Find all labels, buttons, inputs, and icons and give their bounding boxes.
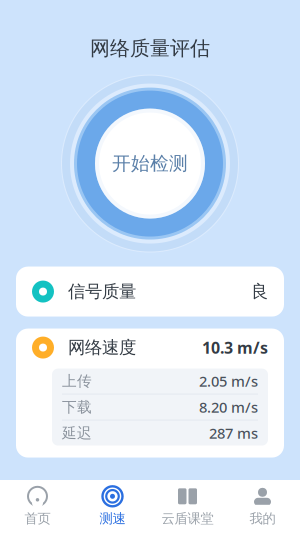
button[interactable]: 信号质量: [16, 267, 284, 317]
staticText: 良: [251, 281, 268, 302]
staticText: 上传: [62, 372, 92, 390]
staticText: 下载: [62, 398, 92, 416]
button[interactable]: 云盾课堂: [150, 480, 225, 533]
staticText: 2.05 m/s: [199, 371, 258, 391]
button[interactable]: 测速: [75, 480, 150, 533]
staticText: 首页: [24, 510, 50, 527]
staticText: 测速: [99, 510, 125, 527]
button[interactable]: 开始检测: [99, 113, 201, 215]
button[interactable]: 我的: [225, 480, 300, 533]
staticText: 10.3 m/s: [202, 337, 268, 358]
staticText: 开始检测: [112, 152, 188, 175]
staticText: 延迟: [62, 424, 92, 442]
staticText: 信号质量: [68, 281, 136, 302]
staticText: 云盾课堂: [161, 510, 213, 527]
staticText: 287 ms: [209, 423, 258, 443]
staticText: 网络质量评估: [90, 36, 210, 61]
staticText: 我的: [249, 510, 275, 527]
button[interactable]: 首页: [0, 480, 75, 533]
staticText: 8.20 m/s: [199, 397, 258, 417]
staticText: 网络速度: [68, 337, 136, 358]
